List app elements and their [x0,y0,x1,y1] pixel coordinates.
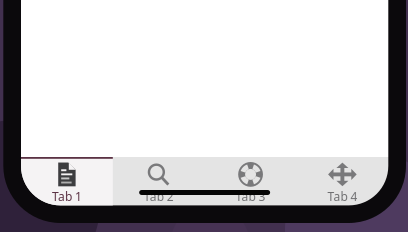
staticText: Tab 2 [144,188,174,204]
button[interactable]: Tab 1 [21,157,113,205]
button[interactable]: Tab 3 [205,157,296,205]
button[interactable]: Tab 2 [113,157,205,205]
button[interactable]: Tab 4 [296,157,388,205]
staticText: Tab 4 [327,188,357,204]
staticText: Tab 3 [236,188,266,204]
staticText: Tab 1 [52,188,82,204]
